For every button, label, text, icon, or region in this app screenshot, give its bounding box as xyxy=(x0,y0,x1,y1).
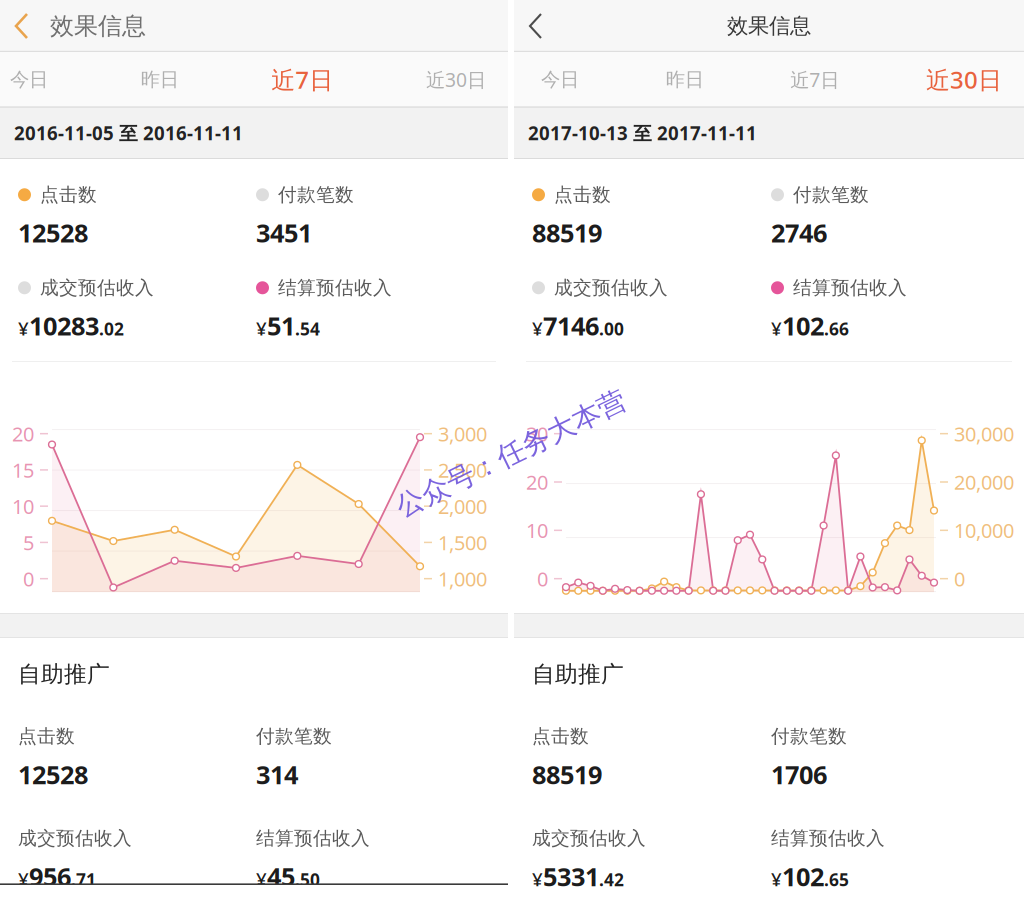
button[interactable]: 今日 xyxy=(541,52,579,107)
staticText: 102 xyxy=(782,308,824,343)
staticText: 5 xyxy=(23,529,34,556)
staticText: .65 xyxy=(824,868,849,891)
staticText: 2017-10-13 至 2017-11-11 xyxy=(528,120,757,146)
staticText: 点击数 xyxy=(554,183,611,206)
staticText: 成交预估收入 xyxy=(532,827,646,850)
staticText: 15 xyxy=(12,456,34,483)
button[interactable]: Back xyxy=(0,0,44,52)
staticText: .71 xyxy=(71,868,96,891)
staticText: 近7日 xyxy=(790,66,839,93)
staticText: 0 xyxy=(23,565,34,592)
staticText: 成交预估收入 xyxy=(554,276,668,299)
staticText: 1706 xyxy=(771,757,827,792)
staticText: 结算预估收入 xyxy=(278,276,392,299)
staticText: 956 xyxy=(29,859,71,894)
staticText: 102 xyxy=(782,859,824,894)
staticText: 2746 xyxy=(771,215,827,250)
staticText: 付款笔数 xyxy=(793,183,869,206)
staticText: 昨日 xyxy=(666,67,704,92)
staticText: 效果信息 xyxy=(50,11,146,41)
staticText: ¥ xyxy=(256,316,267,341)
staticText: .42 xyxy=(599,868,624,891)
staticText: 近30日 xyxy=(926,63,1002,96)
staticText: .54 xyxy=(295,317,320,341)
staticText: 10283 xyxy=(29,308,99,343)
staticText: 结算预估收入 xyxy=(256,827,370,850)
staticText: ¥ xyxy=(771,316,782,341)
staticText: 51 xyxy=(267,308,295,343)
staticText: 314 xyxy=(256,757,298,792)
staticText: 20,000 xyxy=(954,468,1014,496)
staticText: 88519 xyxy=(532,757,602,792)
staticText: 0 xyxy=(537,565,548,592)
staticText: ¥ xyxy=(256,866,267,892)
staticText: 10 xyxy=(12,492,34,520)
staticText: 自助推广 xyxy=(18,660,110,689)
button[interactable]: 今日 xyxy=(10,52,48,107)
staticText: 结算预估收入 xyxy=(771,827,885,850)
staticText: .00 xyxy=(599,317,624,341)
button[interactable]: 近7日 xyxy=(790,52,839,107)
staticText: 公众号：任务大本营 xyxy=(385,436,637,471)
staticText: 点击数 xyxy=(18,725,75,748)
staticText: 30,000 xyxy=(954,420,1014,447)
staticText: 45 xyxy=(267,859,295,894)
staticText: 5331 xyxy=(543,859,599,894)
staticText: 近7日 xyxy=(271,63,333,96)
staticText: ¥ xyxy=(18,316,29,341)
staticText: 12528 xyxy=(18,757,88,792)
staticText: ¥ xyxy=(18,866,29,892)
button[interactable]: 近30日 xyxy=(426,52,486,107)
staticText: .02 xyxy=(99,317,124,341)
staticText: 10 xyxy=(526,517,548,544)
staticText: 效果信息 xyxy=(727,13,811,39)
staticText: 近30日 xyxy=(426,66,486,93)
staticText: 0 xyxy=(954,565,965,592)
staticText: 点击数 xyxy=(532,725,589,748)
button[interactable]: 近7日 xyxy=(271,52,333,107)
button[interactable]: 昨日 xyxy=(666,52,704,107)
staticText: 10,000 xyxy=(954,517,1014,544)
staticText: 付款笔数 xyxy=(278,183,354,206)
staticText: 30 xyxy=(526,420,548,447)
staticText: 20 xyxy=(526,468,548,496)
staticText: .66 xyxy=(824,317,849,341)
staticText: 成交预估收入 xyxy=(40,276,154,299)
staticText: .50 xyxy=(295,868,320,891)
staticText: 结算预估收入 xyxy=(793,276,907,299)
staticText: ¥ xyxy=(532,866,543,892)
staticText: 今日 xyxy=(541,67,579,92)
staticText: 今日 xyxy=(10,67,48,92)
staticText: 付款笔数 xyxy=(771,725,847,748)
staticText: 20 xyxy=(12,420,34,447)
staticText: 3,000 xyxy=(438,420,487,447)
button[interactable]: Back xyxy=(514,0,558,52)
staticText: 成交预估收入 xyxy=(18,827,132,850)
staticText: 自助推广 xyxy=(532,660,624,689)
staticText: 2,500 xyxy=(438,456,487,483)
staticText: 1,000 xyxy=(438,565,487,592)
button[interactable]: 近30日 xyxy=(926,52,1002,107)
staticText: 2016-11-05 至 2016-11-11 xyxy=(14,120,243,146)
staticText: 2,000 xyxy=(438,492,487,520)
staticText: 7146 xyxy=(543,308,599,343)
button[interactable]: 昨日 xyxy=(141,52,179,107)
staticText: 3451 xyxy=(256,215,312,250)
staticText: ¥ xyxy=(532,316,543,341)
staticText: 1,500 xyxy=(438,529,487,556)
staticText: 12528 xyxy=(18,215,88,250)
staticText: 88519 xyxy=(532,215,602,250)
staticText: 昨日 xyxy=(141,67,179,92)
staticText: ¥ xyxy=(771,866,782,892)
staticText: 点击数 xyxy=(40,183,97,206)
staticText: 付款笔数 xyxy=(256,725,332,748)
